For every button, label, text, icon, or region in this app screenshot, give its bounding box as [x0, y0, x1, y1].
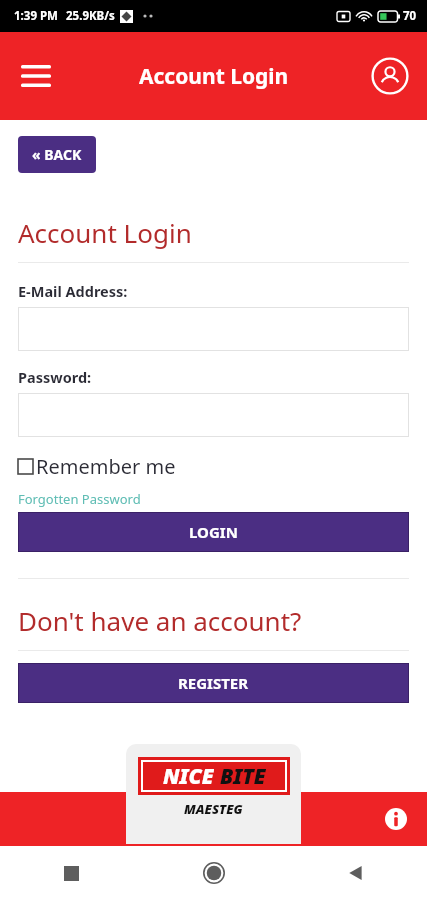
staticText: 1:39 PM [14, 8, 58, 24]
button[interactable]: REGISTER [19, 664, 408, 702]
staticText: Remember me [36, 453, 176, 480]
button[interactable]: Forgotten Password [18, 490, 141, 508]
staticText: Don't have an account? [18, 603, 302, 638]
staticText: « BACK [32, 145, 82, 164]
staticText: E-Mail Address: [18, 281, 128, 301]
staticText: 25.9KB/s [66, 8, 115, 24]
button[interactable]: « BACK [18, 136, 96, 173]
button[interactable]: Information [379, 802, 413, 836]
button[interactable] [18, 393, 409, 437]
staticText: 70 [403, 8, 417, 24]
button[interactable]: LOGIN [19, 513, 408, 551]
button[interactable]: Nice Bite Maesteg logo [126, 744, 301, 844]
button[interactable]: Remember me [0, 451, 427, 482]
button[interactable]: Recent apps [0, 846, 143, 900]
button[interactable]: Open navigation menu [10, 50, 62, 102]
staticText: Forgotten Password [18, 490, 141, 508]
staticText: MAESTEG [184, 800, 243, 818]
staticText: Account Login [139, 62, 289, 91]
staticText: Password: [18, 367, 92, 387]
staticText: Account Login [18, 215, 192, 250]
staticText: BITE [220, 762, 266, 790]
button[interactable]: Account [365, 51, 415, 101]
staticText: LOGIN [189, 522, 238, 542]
staticText: NICE [163, 762, 214, 790]
button[interactable]: Back [285, 846, 427, 900]
button[interactable]: Home [143, 846, 285, 900]
button[interactable] [18, 307, 409, 351]
staticText: REGISTER [178, 673, 249, 693]
